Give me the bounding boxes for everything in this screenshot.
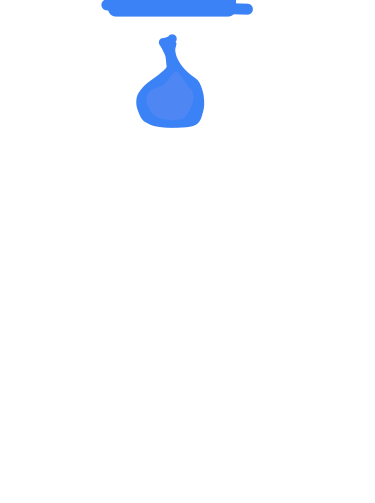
button[interactable]: Continue [101,0,253,17]
